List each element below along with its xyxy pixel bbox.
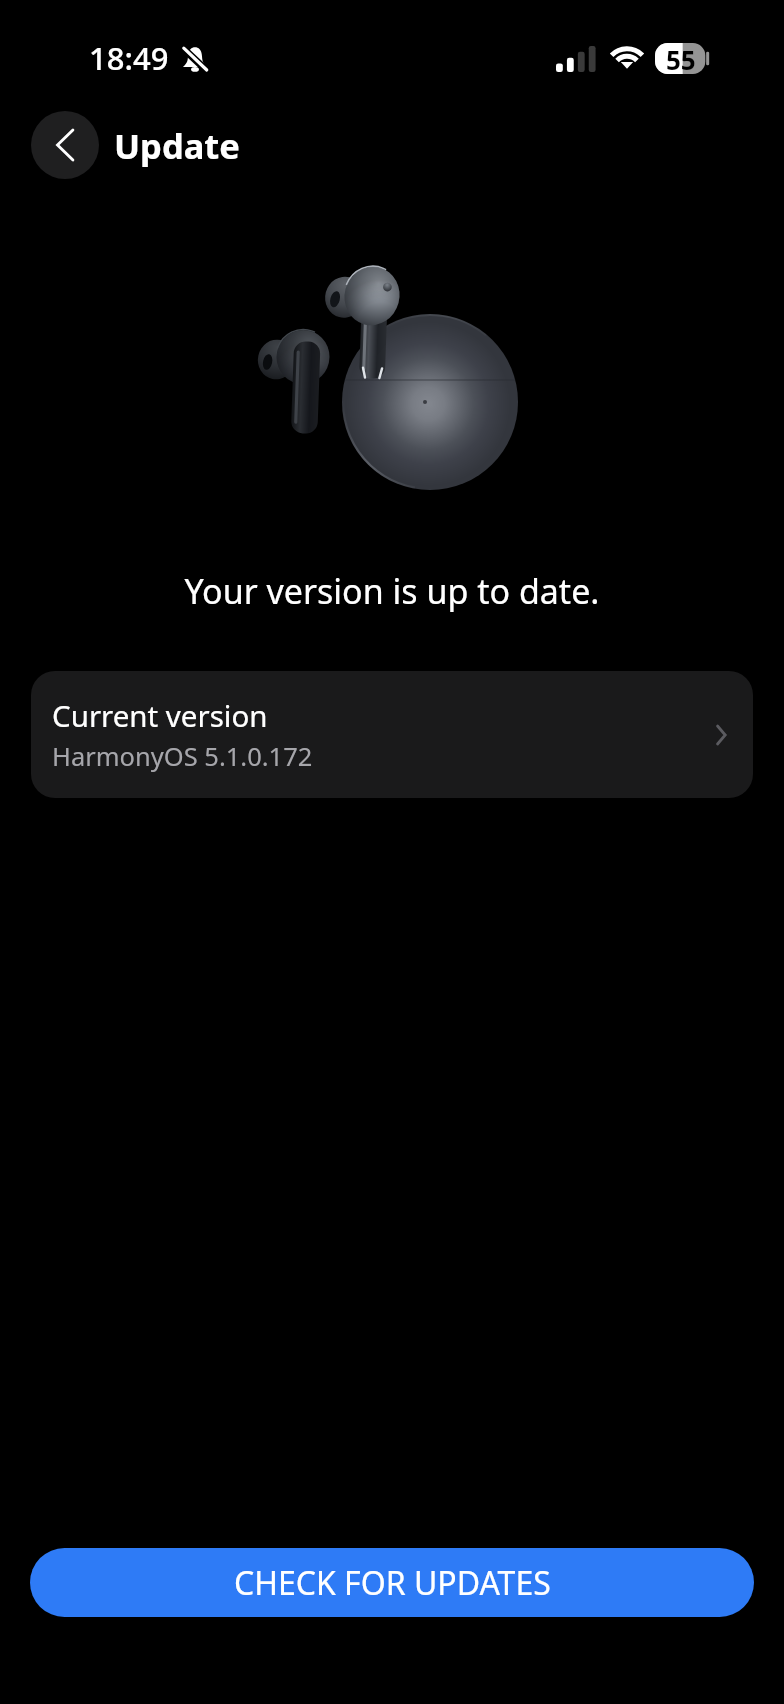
- button[interactable]: CHECK FOR UPDATES: [30, 1548, 754, 1617]
- staticText: CHECK FOR UPDATES: [234, 1561, 551, 1605]
- staticText: Update: [114, 122, 240, 169]
- staticText: Current version: [52, 695, 268, 735]
- staticText: 18:49: [89, 37, 169, 79]
- staticText: HarmonyOS 5.1.0.172: [52, 739, 313, 774]
- staticText: Your version is up to date.: [0, 568, 784, 614]
- staticText: 55: [666, 42, 696, 73]
- button[interactable]: Current version: [31, 671, 753, 798]
- button[interactable]: Back: [31, 111, 99, 179]
